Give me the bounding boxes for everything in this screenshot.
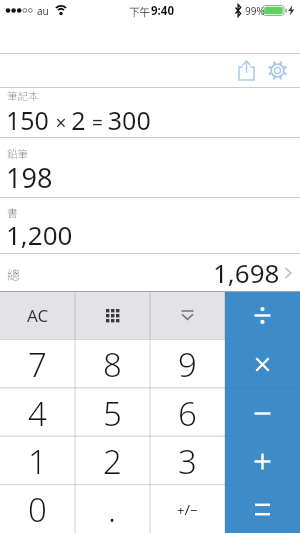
- button[interactable]: [225, 291, 300, 340]
- staticText: 0: [28, 487, 47, 532]
- staticText: 1,698: [213, 255, 280, 290]
- staticText: +/−: [177, 499, 198, 519]
- staticText: 1,200: [6, 217, 73, 252]
- button[interactable]: [225, 340, 300, 389]
- staticText: 8: [103, 342, 122, 387]
- staticText: 150 × 2 = 300: [6, 103, 151, 137]
- button[interactable]: 9: [150, 340, 225, 389]
- button[interactable]: 4: [0, 389, 75, 437]
- staticText: 198: [6, 159, 53, 196]
- button[interactable]: +/−: [150, 485, 225, 533]
- staticText: 鉛筆: [7, 146, 28, 161]
- button[interactable]: 書: [0, 198, 300, 253]
- button[interactable]: [225, 389, 300, 437]
- staticText: 書: [7, 205, 18, 220]
- button[interactable]: 3: [150, 437, 225, 485]
- button[interactable]: 總: [0, 254, 300, 291]
- button[interactable]: 2: [75, 437, 150, 485]
- staticText: 99%: [245, 4, 265, 18]
- button[interactable]: [150, 291, 225, 340]
- button[interactable]: [232, 54, 260, 87]
- staticText: 9:40: [151, 3, 174, 19]
- staticText: 7: [28, 342, 47, 387]
- staticText: 2: [103, 439, 122, 484]
- button[interactable]: [75, 291, 150, 340]
- button[interactable]: [225, 485, 300, 533]
- staticText: 9: [178, 342, 197, 387]
- staticText: 4: [28, 391, 47, 436]
- staticText: 筆記本: [7, 88, 39, 103]
- staticText: 下午: [129, 4, 150, 19]
- button[interactable]: .: [75, 485, 150, 533]
- button[interactable]: 6: [150, 389, 225, 437]
- staticText: 總: [7, 265, 21, 284]
- button[interactable]: 筆記本: [0, 88, 300, 137]
- staticText: 6: [178, 391, 197, 436]
- button[interactable]: 8: [75, 340, 150, 389]
- staticText: 3: [178, 439, 197, 484]
- button[interactable]: 5: [75, 389, 150, 437]
- staticText: .: [108, 487, 117, 532]
- staticText: 1: [28, 439, 47, 484]
- button[interactable]: 1: [0, 437, 75, 485]
- button[interactable]: 7: [0, 340, 75, 389]
- staticText: 5: [103, 391, 122, 436]
- button[interactable]: AC: [0, 291, 75, 340]
- staticText: au: [37, 4, 49, 18]
- button[interactable]: [263, 54, 291, 87]
- staticText: AC: [27, 304, 49, 327]
- button[interactable]: [225, 437, 300, 485]
- button[interactable]: 0: [0, 485, 75, 533]
- button[interactable]: 鉛筆: [0, 138, 300, 197]
